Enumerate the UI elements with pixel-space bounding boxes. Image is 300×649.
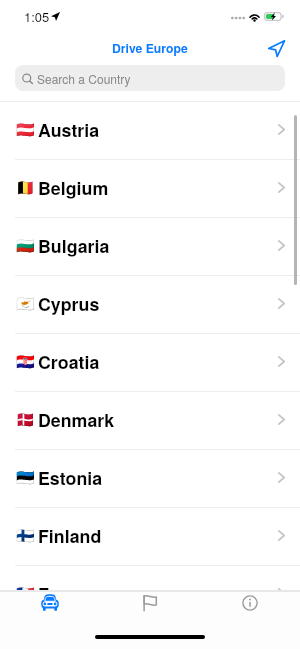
staticText: Cyprus (38, 291, 100, 316)
button[interactable]: Current location (263, 35, 289, 61)
staticText: 1:05 (24, 7, 50, 26)
button[interactable]: 🇩🇰 (0, 392, 300, 450)
staticText: Belgium (38, 175, 109, 200)
staticText: 🇨🇾 (16, 295, 35, 313)
button[interactable]: Flags (100, 592, 200, 613)
staticText: 🇧🇬 (16, 237, 35, 255)
button[interactable]: Drive (0, 592, 100, 613)
button[interactable]: Info (200, 592, 300, 613)
button[interactable]: 🇪🇪 (0, 450, 300, 508)
staticText: 🇩🇰 (16, 411, 35, 429)
staticText: Croatia (38, 349, 100, 374)
staticText: Finland (38, 523, 102, 548)
button[interactable]: 🇫🇷 (0, 566, 300, 602)
staticText: 🇦🇹 (16, 121, 35, 139)
staticText: 🇭🇷 (16, 353, 35, 371)
staticText: Bulgaria (38, 233, 110, 258)
button[interactable]: 🇨🇾 (0, 276, 300, 334)
staticText: 🇫🇮 (16, 527, 35, 545)
button[interactable]: 🇧🇪 (0, 160, 300, 218)
button[interactable]: 🇭🇷 (0, 334, 300, 392)
button[interactable]: 🇦🇹 (0, 102, 300, 160)
button[interactable]: 🇫🇮 (0, 508, 300, 566)
button[interactable]: 🇧🇬 (0, 218, 300, 276)
staticText: Search a Country (37, 70, 131, 87)
button[interactable]: Search a Country (15, 65, 285, 91)
staticText: Drive Europe (112, 39, 188, 56)
staticText: 🇫🇷 (16, 585, 35, 602)
staticText: Austria (38, 117, 100, 142)
staticText: 🇧🇪 (16, 179, 35, 197)
staticText: France (38, 581, 97, 602)
staticText: 🇪🇪 (16, 469, 35, 487)
staticText: Denmark (38, 407, 115, 432)
staticText: Estonia (38, 465, 103, 490)
